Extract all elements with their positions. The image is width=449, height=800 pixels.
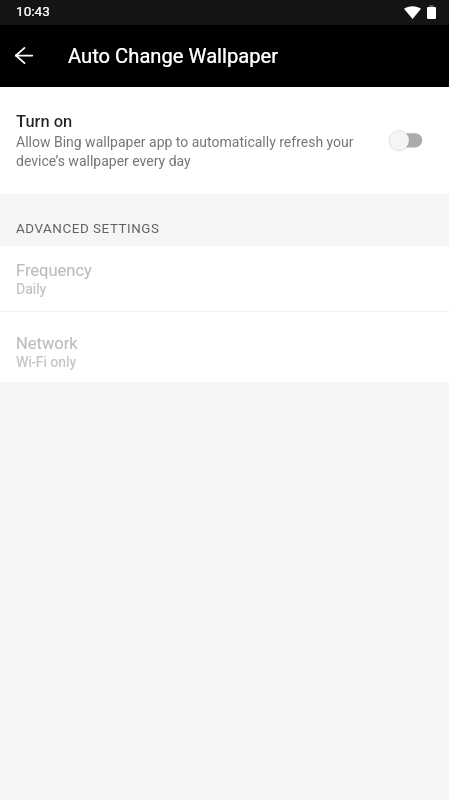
button[interactable]	[0, 246, 449, 311]
staticText: Allow Bing wallpaper app to automaticall…	[16, 134, 354, 170]
staticText: Network	[16, 334, 78, 353]
staticText: ADVANCED SETTINGS	[16, 221, 160, 237]
button[interactable]: Turn on	[0, 86, 449, 194]
other: Battery full	[427, 5, 436, 19]
button[interactable]: Turn on automatic wallpaper change	[385, 126, 427, 154]
staticText: Frequency	[16, 261, 92, 280]
button[interactable]	[0, 312, 449, 382]
button[interactable]: Back	[0, 31, 48, 79]
staticText: Turn on	[16, 112, 73, 131]
staticText: Wi-Fi only	[16, 354, 77, 370]
staticText: Auto Change Wallpaper	[68, 44, 279, 68]
staticText: Daily	[16, 281, 47, 297]
staticText: 10:43	[16, 3, 50, 19]
other: Wi-Fi connected	[404, 6, 421, 19]
